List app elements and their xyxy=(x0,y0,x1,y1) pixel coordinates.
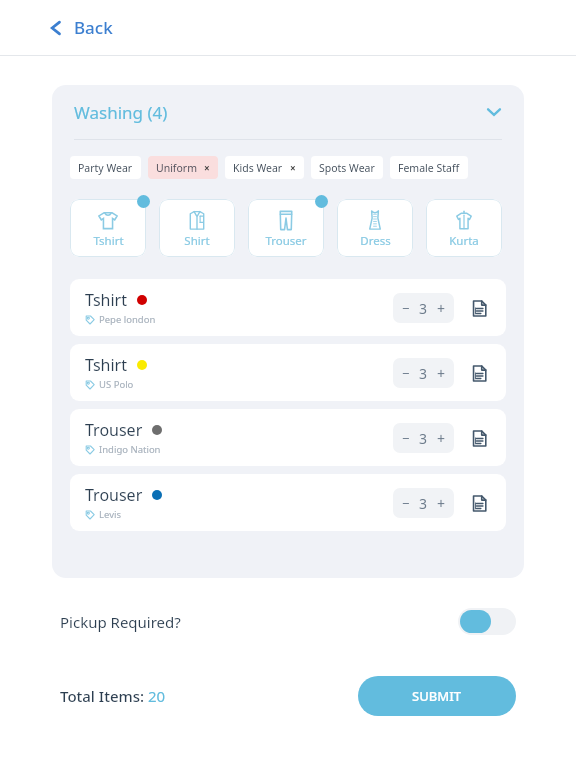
button[interactable]: Add note xyxy=(466,360,492,386)
staticText: Tshirt xyxy=(85,289,128,311)
button[interactable]: Decrease quantity xyxy=(393,358,419,388)
staticText: − xyxy=(402,299,410,317)
staticText: Levis xyxy=(99,508,121,521)
staticText: Back xyxy=(74,16,113,39)
button[interactable]: Pickup required toggle xyxy=(458,608,516,635)
staticText: + xyxy=(437,429,446,448)
button[interactable]: Shirt xyxy=(159,199,235,257)
button[interactable]: Add note xyxy=(466,425,492,451)
button[interactable]: Decrease quantity xyxy=(393,488,419,518)
staticText: Shirt xyxy=(184,233,210,249)
staticText: + xyxy=(437,364,446,383)
staticText: − xyxy=(402,429,410,447)
staticText: Indigo Nation xyxy=(99,443,161,456)
staticText: + xyxy=(437,494,446,513)
staticText: Tshirt xyxy=(85,354,128,376)
button[interactable]: Trouser xyxy=(70,474,506,531)
button[interactable]: Increase quantity xyxy=(428,423,454,453)
staticText: 20 xyxy=(148,686,166,706)
staticText: Tshirt xyxy=(93,233,124,249)
staticText: 3 xyxy=(419,429,428,448)
staticText: Trouser xyxy=(265,233,307,249)
staticText: Pickup Required? xyxy=(60,612,181,632)
staticText: Spots Wear xyxy=(319,161,375,175)
button[interactable]: Tshirt xyxy=(70,279,506,336)
button[interactable]: Trouser xyxy=(70,409,506,466)
staticText: 3 xyxy=(419,494,428,513)
staticText: Total Items: xyxy=(60,686,148,706)
staticText: SUBMIT xyxy=(412,687,462,705)
button[interactable]: Tshirt xyxy=(70,199,146,257)
staticText: Dress xyxy=(360,233,391,249)
button[interactable]: Decrease quantity xyxy=(393,293,419,323)
staticText: × xyxy=(290,161,296,175)
button[interactable]: Kids Wear xyxy=(225,156,304,179)
staticText: Kurta xyxy=(449,233,479,249)
button[interactable]: Tshirt xyxy=(70,344,506,401)
staticText: Pepe london xyxy=(99,313,156,326)
button[interactable]: Increase quantity xyxy=(428,358,454,388)
button[interactable]: Increase quantity xyxy=(428,488,454,518)
staticText: 3 xyxy=(419,364,428,383)
staticText: Female Staff xyxy=(398,161,460,175)
staticText: Kids Wear xyxy=(233,161,283,175)
staticText: Washing (4) xyxy=(74,101,168,124)
button[interactable]: SUBMIT xyxy=(358,676,516,716)
button[interactable]: Back xyxy=(40,10,121,45)
button[interactable]: Add note xyxy=(466,490,492,516)
staticText: + xyxy=(437,299,446,318)
button[interactable]: Party Wear xyxy=(70,156,141,179)
button[interactable]: Increase quantity xyxy=(428,293,454,323)
staticText: Party Wear xyxy=(78,161,133,175)
staticText: Trouser xyxy=(85,419,143,441)
button[interactable]: Kurta xyxy=(426,199,502,257)
staticText: − xyxy=(402,494,410,512)
button[interactable]: Dress xyxy=(337,199,413,257)
staticText: 3 xyxy=(419,299,428,318)
button[interactable]: Decrease quantity xyxy=(393,423,419,453)
button[interactable]: Washing (4) xyxy=(52,85,524,139)
staticText: × xyxy=(204,161,210,175)
button[interactable]: Trouser xyxy=(248,199,324,257)
staticText: Uniform xyxy=(156,161,197,175)
button[interactable]: Female Staff xyxy=(390,156,468,179)
staticText: US Polo xyxy=(99,378,134,391)
staticText: Trouser xyxy=(85,484,143,506)
button[interactable]: Spots Wear xyxy=(311,156,383,179)
button[interactable]: Uniform xyxy=(148,156,218,179)
button[interactable]: Add note xyxy=(466,295,492,321)
staticText: − xyxy=(402,364,410,382)
